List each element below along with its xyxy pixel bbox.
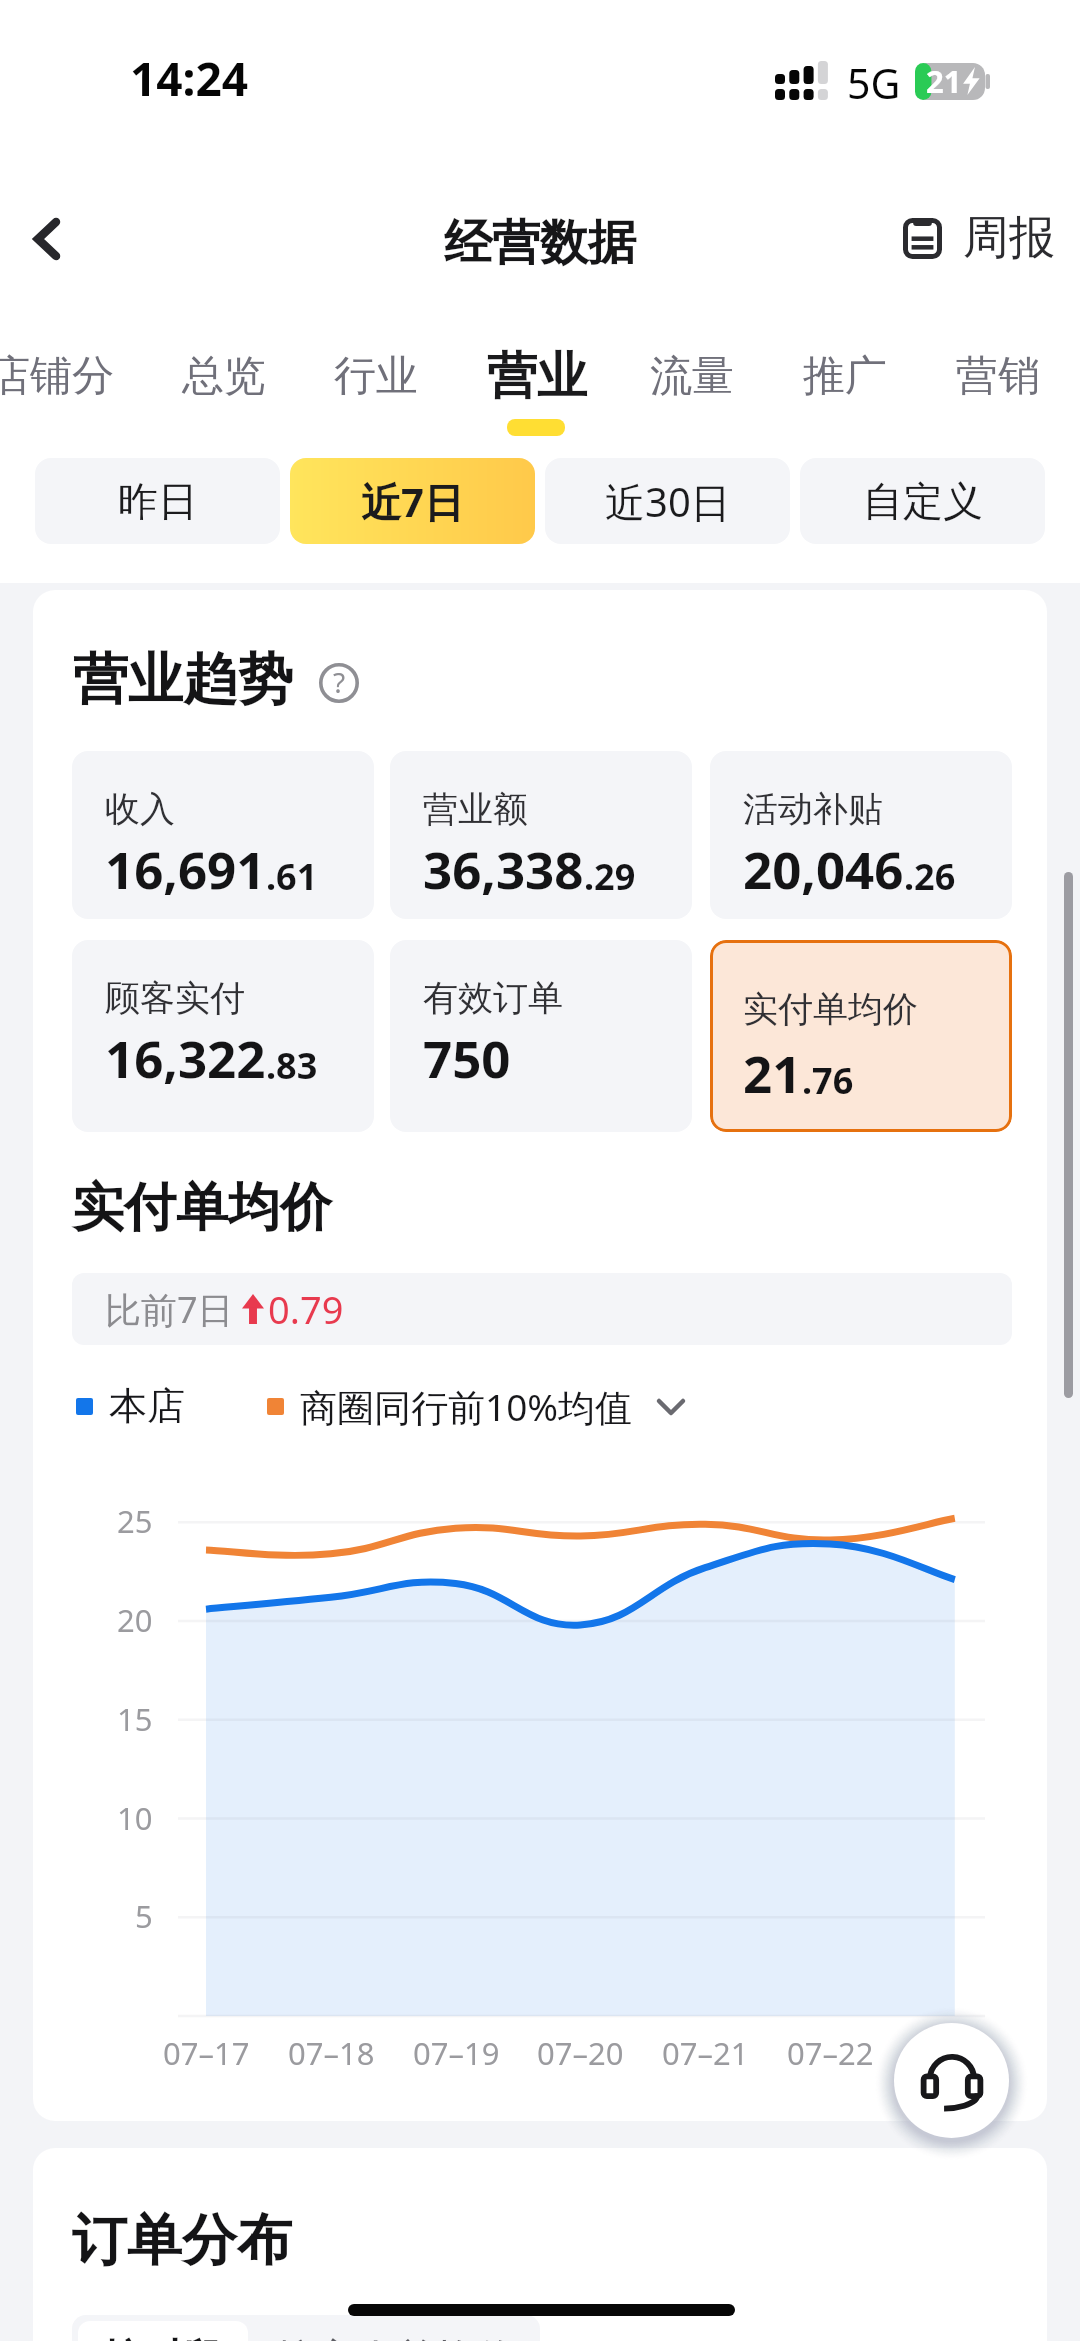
staticText: 活动补贴: [743, 787, 883, 831]
staticText: .26: [904, 852, 956, 901]
staticText: 按客人单均价: [276, 2333, 516, 2341]
button[interactable]: 活动补贴: [710, 751, 1012, 919]
staticText: 营销: [956, 350, 1040, 403]
staticText: 自定义: [863, 476, 983, 526]
staticText: 750: [423, 1023, 511, 1092]
button[interactable]: 营业: [461, 326, 561, 438]
button[interactable]: 返回: [1, 193, 93, 285]
staticText: 07–18: [288, 2032, 375, 2074]
staticText: 21: [743, 1038, 802, 1107]
staticText: 经营数据: [444, 213, 636, 273]
button[interactable]: 周报: [903, 196, 1055, 280]
button[interactable]: 按客人单均价: [253, 2321, 538, 2341]
staticText: 营业额: [423, 787, 528, 831]
staticText: .83: [266, 1041, 318, 1090]
button[interactable]: 切换对比对象: [649, 1384, 693, 1428]
staticText: ?: [333, 663, 346, 701]
staticText: 实付单均价: [72, 1175, 332, 1241]
staticText: 25: [117, 1500, 153, 1542]
staticText: 总览: [182, 350, 266, 403]
staticText: 07–20: [537, 2032, 624, 2074]
staticText: 36,338: [423, 834, 584, 903]
staticText: 5G: [847, 55, 901, 111]
button[interactable]: 营销: [930, 326, 1014, 438]
staticText: 15: [117, 1698, 153, 1740]
staticText: 营业趋势: [73, 645, 293, 714]
staticText: 近30日: [605, 474, 731, 529]
staticText: 商圈同行前10%均值: [300, 1381, 633, 1432]
staticText: .61: [266, 852, 318, 901]
staticText: 流量: [650, 350, 734, 403]
staticText: 行业: [334, 350, 418, 403]
staticText: 20,046: [743, 834, 904, 903]
button[interactable]: 顾客实付: [72, 940, 374, 1132]
staticText: 16,691: [105, 834, 266, 903]
button[interactable]: 营业额: [390, 751, 692, 919]
button[interactable]: 指标说明: [313, 657, 365, 709]
staticText: 07–21: [662, 2032, 749, 2074]
staticText: 推广: [803, 350, 887, 403]
staticText: 本店: [109, 1382, 185, 1430]
staticText: 店铺分: [0, 350, 114, 403]
button[interactable]: 联系客服: [894, 2023, 1009, 2138]
staticText: 有效订单: [423, 976, 563, 1020]
button[interactable]: 按时段: [78, 2321, 248, 2341]
staticText: .29: [584, 852, 636, 901]
staticText: 20: [117, 1599, 153, 1641]
staticText: 营业: [487, 345, 587, 408]
button[interactable]: 流量: [624, 326, 708, 438]
staticText: 14:24: [130, 47, 249, 110]
staticText: 按时段: [103, 2333, 223, 2341]
staticText: 16,322: [105, 1023, 266, 1092]
button[interactable]: 昨日: [35, 458, 280, 544]
staticText: .76: [802, 1056, 854, 1105]
button[interactable]: 总览: [156, 326, 240, 438]
staticText: 07–22: [787, 2032, 874, 2074]
button[interactable]: 店铺分: [0, 326, 88, 438]
staticText: 5: [135, 1895, 153, 1937]
staticText: 07–19: [413, 2032, 500, 2074]
button[interactable]: 推广: [777, 326, 861, 438]
button[interactable]: 近30日: [545, 458, 790, 544]
staticText: 昨日: [118, 476, 198, 526]
button[interactable]: 自定义: [800, 458, 1045, 544]
staticText: 周报: [963, 209, 1055, 267]
staticText: 订单分布: [72, 2206, 292, 2275]
staticText: 21: [926, 60, 962, 102]
staticText: 收入: [105, 787, 175, 831]
staticText: 顾客实付: [105, 976, 245, 1020]
staticText: 近7日: [361, 474, 464, 529]
staticText: 0.79: [268, 1283, 344, 1335]
button[interactable]: 行业: [308, 326, 392, 438]
staticText: 实付单均价: [743, 987, 918, 1031]
staticText: 10: [117, 1797, 153, 1839]
button[interactable]: 实付单均价: [710, 940, 1012, 1132]
button[interactable]: 有效订单: [390, 940, 692, 1132]
button[interactable]: 收入: [72, 751, 374, 919]
staticText: 比前7日: [105, 1285, 234, 1334]
button[interactable]: 近7日: [290, 458, 535, 544]
staticText: 07–17: [163, 2032, 250, 2074]
